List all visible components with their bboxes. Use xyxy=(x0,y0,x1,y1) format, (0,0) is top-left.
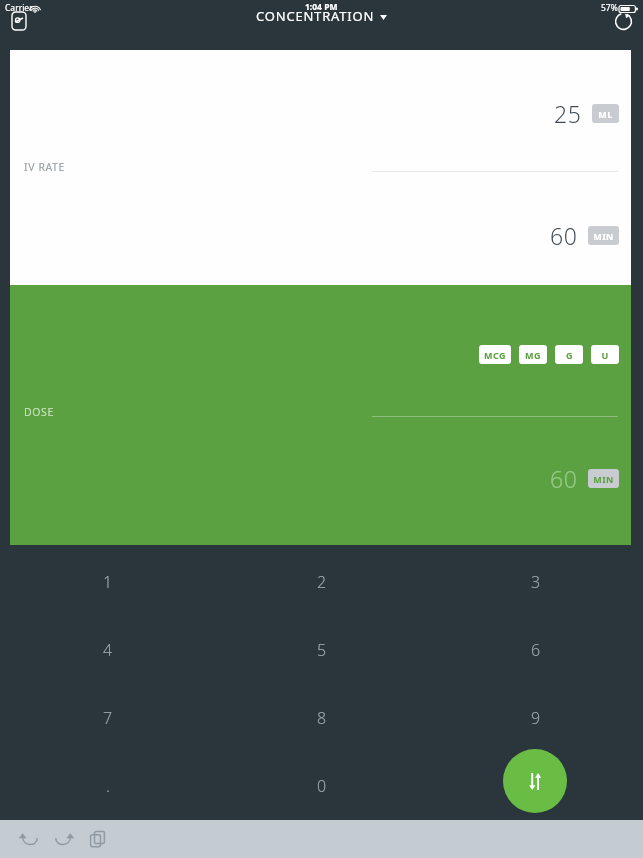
button[interactable]: G xyxy=(560,345,578,364)
staticText: MIN xyxy=(593,473,614,485)
staticText: MCG xyxy=(484,349,506,361)
button[interactable]: 4 xyxy=(0,616,215,684)
button[interactable]: 9 xyxy=(429,684,643,752)
staticText: 1 xyxy=(103,571,113,593)
button[interactable]: 6 xyxy=(429,616,643,684)
staticText: MIN xyxy=(593,230,614,242)
button[interactable]: Reset xyxy=(608,6,638,36)
button[interactable]: 2 xyxy=(215,548,429,616)
button[interactable]: 5 xyxy=(215,616,429,684)
button[interactable]: MIN xyxy=(593,226,614,245)
button[interactable]: 60 xyxy=(550,463,619,494)
staticText: 8 xyxy=(317,707,327,729)
staticText: 57% xyxy=(601,2,618,14)
staticText: 1:04 PM xyxy=(305,1,338,13)
button[interactable]: ML xyxy=(597,104,614,123)
button[interactable]: MCG xyxy=(484,345,506,364)
button[interactable]: Copy xyxy=(80,822,114,856)
button[interactable]: Saved xyxy=(4,6,34,36)
button[interactable]: Swap values xyxy=(503,749,567,813)
button[interactable]: CONCENTRATION xyxy=(256,7,387,25)
staticText: DOSE xyxy=(24,405,54,419)
staticText: 5 xyxy=(317,639,327,661)
button[interactable]: 60 xyxy=(550,220,619,251)
staticText: 25 xyxy=(554,98,582,129)
staticText: 9 xyxy=(531,707,541,729)
button[interactable]: Undo xyxy=(12,822,46,856)
button[interactable]: 25 xyxy=(554,98,619,129)
staticText: Carrier xyxy=(5,2,33,14)
staticText: 60 xyxy=(550,220,578,251)
button[interactable]: 7 xyxy=(0,684,215,752)
staticText: U xyxy=(601,349,609,361)
staticText: 2 xyxy=(317,571,327,593)
staticText: . xyxy=(106,775,110,797)
staticText: 60 xyxy=(550,463,578,494)
staticText: IV RATE xyxy=(24,160,65,174)
staticText: 3 xyxy=(531,571,541,593)
staticText: G xyxy=(566,349,573,361)
staticText: 7 xyxy=(103,707,113,729)
staticText: 4 xyxy=(103,639,113,661)
button[interactable]: U xyxy=(596,345,614,364)
staticText: CONCENTRATION xyxy=(256,7,375,25)
button[interactable]: MG xyxy=(524,345,542,364)
staticText: 6 xyxy=(531,639,541,661)
button[interactable]: Redo xyxy=(46,822,80,856)
button[interactable]: 0 xyxy=(215,752,429,820)
button[interactable]: 8 xyxy=(215,684,429,752)
staticText: ML xyxy=(598,108,613,120)
staticText: MG xyxy=(525,349,541,361)
button[interactable]: 3 xyxy=(429,548,643,616)
staticText: 0 xyxy=(317,775,327,797)
button[interactable]: MIN xyxy=(593,469,614,488)
button[interactable]: 1 xyxy=(0,548,215,616)
